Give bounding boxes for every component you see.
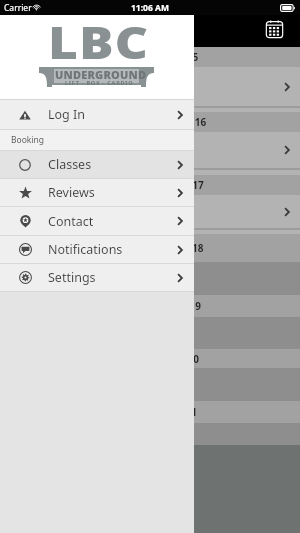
staticText: Contact: [48, 213, 94, 230]
staticText: Mon, Jul 18: [149, 241, 204, 255]
button[interactable]: [0, 132, 300, 168]
staticText: UNDERGROUND: [55, 67, 147, 82]
button[interactable]: Contact: [0, 207, 194, 235]
staticText: LIFT · BOX · CARDIO: [65, 79, 134, 86]
button[interactable]: Classes: [0, 151, 194, 178]
staticText: Classes: [48, 156, 92, 173]
staticText: Settings: [48, 269, 96, 286]
staticText: Thu, Jul 21: [146, 405, 198, 419]
staticText: Fri, Jul 15: [153, 50, 199, 64]
staticText: Wed, Jul 20: [145, 352, 200, 366]
button[interactable]: Notifications: [0, 236, 194, 263]
staticText: 11:06 AM: [131, 2, 169, 14]
staticText: Reviews: [48, 184, 95, 201]
staticText: Tue, Jul 19: [151, 299, 202, 313]
button[interactable]: Calendar: [265, 20, 284, 39]
staticText: Sat, Jul 16: [158, 115, 207, 129]
staticText: Carrier: [4, 2, 32, 14]
button[interactable]: Log In: [0, 100, 194, 129]
staticText: Booking: [11, 134, 45, 146]
staticText: LBC: [48, 11, 149, 72]
staticText: Notifications: [48, 241, 123, 258]
button[interactable]: Settings: [0, 264, 194, 291]
button[interactable]: Reviews: [0, 179, 194, 206]
button[interactable]: [0, 67, 300, 106]
staticText: Log In: [48, 106, 86, 123]
button[interactable]: [0, 195, 300, 228]
staticText: Sun, Jul 17: [153, 178, 204, 192]
